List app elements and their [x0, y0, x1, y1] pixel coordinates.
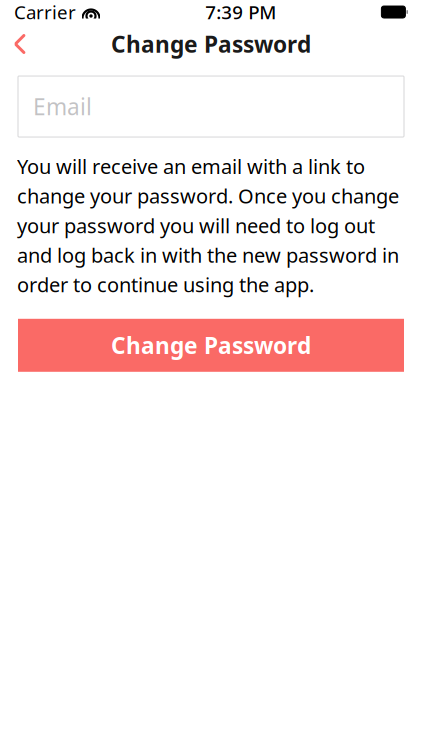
staticText: Email: [33, 91, 92, 121]
staticText: Change Password: [111, 29, 311, 59]
button[interactable]: Email: [18, 76, 404, 137]
staticText: Change Password: [111, 330, 311, 360]
staticText: Carrier: [14, 0, 76, 24]
staticText: You will receive an email with a link to…: [17, 153, 399, 298]
button[interactable]: Change Password: [18, 319, 404, 372]
button[interactable]: Back: [0, 26, 40, 62]
staticText: 7:39 PM: [205, 0, 276, 24]
